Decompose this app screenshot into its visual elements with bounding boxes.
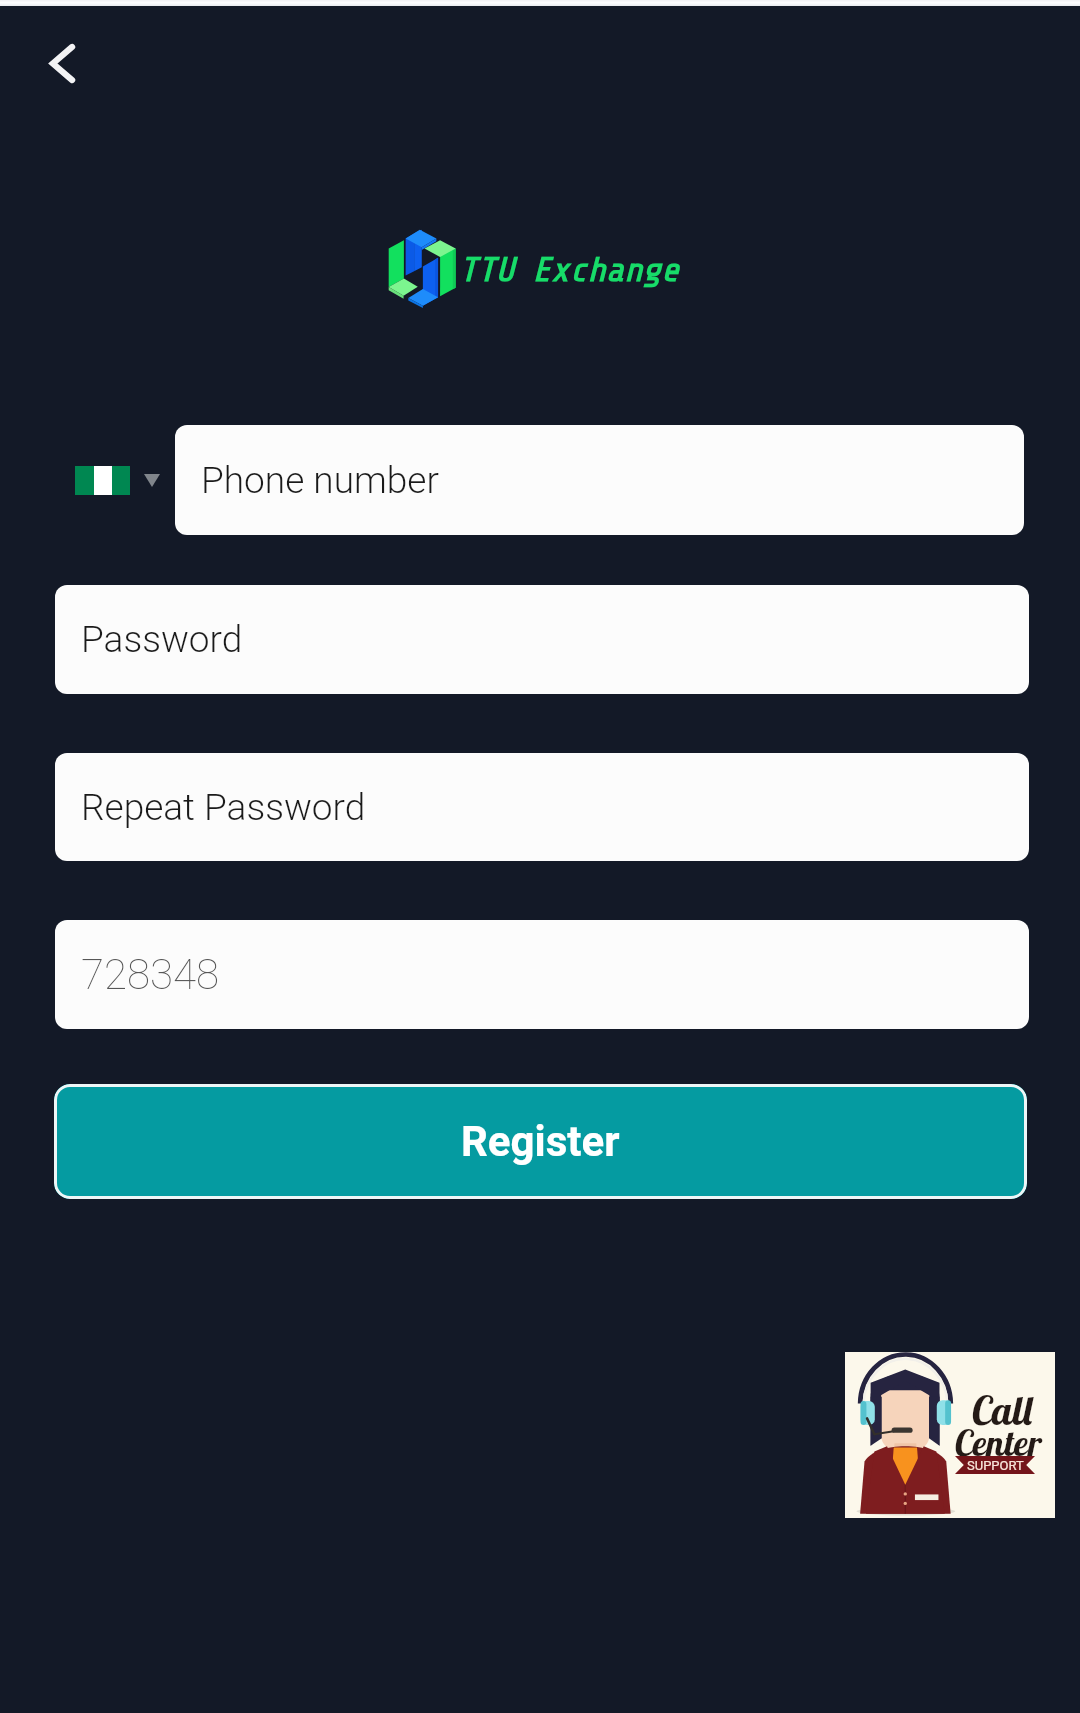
staticText: SUPPORT [967,1458,1024,1473]
button[interactable]: Back [22,34,102,92]
button[interactable]: Repeat Password [55,753,1029,861]
staticText: Phone number [201,459,439,502]
button[interactable]: Register [54,1084,1027,1199]
button[interactable]: Password [55,585,1029,694]
staticText: TTU Exchange [459,251,680,289]
staticText: 728348 [81,950,219,999]
button[interactable]: Select country code [55,425,165,535]
staticText: Call [971,1385,1034,1435]
button[interactable]: Phone number [175,425,1024,535]
staticText: Password [81,618,243,661]
button[interactable]: Call center support [845,1352,1055,1518]
staticText: Register [461,1117,620,1166]
button[interactable]: 728348 [55,920,1029,1029]
staticText: Repeat Password [81,786,366,829]
staticText: Center [954,1420,1042,1465]
